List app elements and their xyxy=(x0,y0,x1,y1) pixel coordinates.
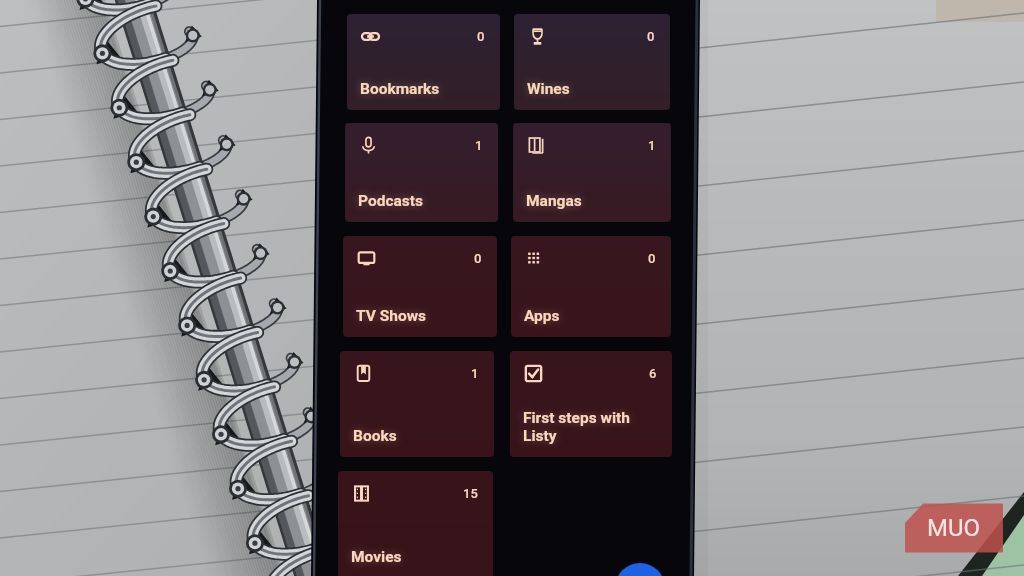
button[interactable]: 1 xyxy=(513,123,671,222)
button[interactable]: 6 xyxy=(510,351,672,457)
button[interactable]: 1 xyxy=(340,351,494,457)
staticText: Movies xyxy=(351,548,402,566)
staticText: MUO xyxy=(927,514,981,542)
staticText: Wines xyxy=(527,80,570,98)
button[interactable]: 0 xyxy=(343,236,497,337)
button[interactable]: 0 xyxy=(514,14,670,110)
staticText: 1 xyxy=(475,138,483,153)
button[interactable]: 15 xyxy=(338,471,493,576)
button[interactable]: 0 xyxy=(347,14,500,110)
staticText: Books xyxy=(353,427,397,445)
staticText: Podcasts xyxy=(358,192,424,210)
staticText: TV Shows xyxy=(356,307,427,325)
staticText: 6 xyxy=(649,366,657,381)
staticText: 0 xyxy=(647,29,655,44)
button[interactable]: Add list xyxy=(615,563,665,576)
staticText: Bookmarks xyxy=(360,80,440,98)
staticText: 0 xyxy=(648,251,656,266)
button[interactable]: 1 xyxy=(345,123,498,222)
staticText: 1 xyxy=(471,366,479,381)
staticText: First steps with Listy xyxy=(523,409,630,445)
staticText: 15 xyxy=(463,486,478,501)
staticText: 0 xyxy=(474,251,482,266)
staticText: Mangas xyxy=(526,192,582,210)
button[interactable]: 0 xyxy=(511,236,671,337)
staticText: 0 xyxy=(477,29,485,44)
staticText: Apps xyxy=(524,307,560,325)
staticText: 1 xyxy=(648,138,656,153)
